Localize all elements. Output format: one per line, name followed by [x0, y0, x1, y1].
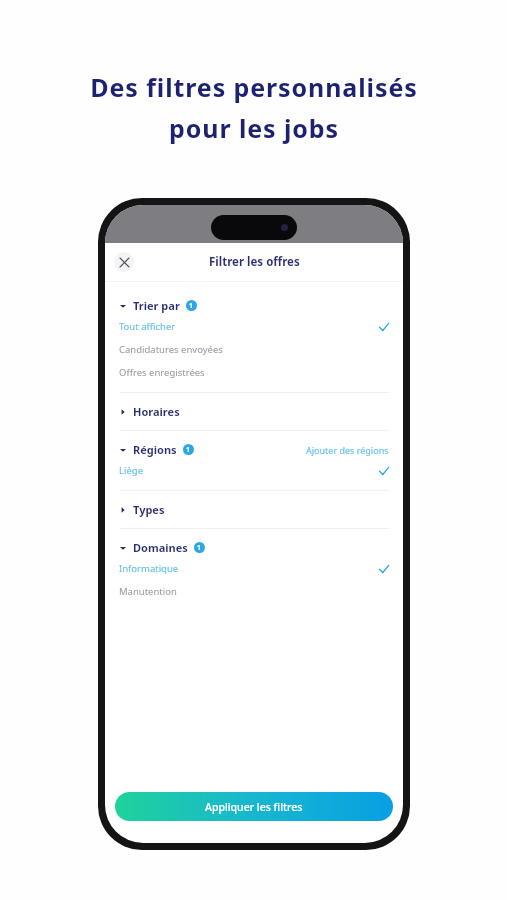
staticText: 1	[197, 543, 202, 553]
staticText: Candidatures envoyées	[119, 343, 223, 356]
button[interactable]: Manutention	[119, 580, 389, 603]
staticText: Manutention	[119, 585, 177, 598]
button[interactable]: Tout afficher	[119, 315, 389, 338]
button[interactable]: Régions	[119, 440, 389, 459]
staticText: pour les jobs	[169, 111, 339, 145]
button[interactable]: Candidatures envoyées	[119, 338, 389, 361]
button[interactable]: Offres enregistrées	[119, 361, 389, 384]
button[interactable]: Appliquer les filtres	[115, 792, 393, 821]
staticText: Trier par	[133, 298, 180, 313]
staticText: Régions	[133, 442, 177, 457]
staticText: Appliquer les filtres	[205, 800, 303, 814]
staticText: Horaires	[133, 404, 180, 419]
staticText: 1	[189, 301, 194, 311]
staticText: Offres enregistrées	[119, 366, 205, 379]
staticText: Informatique	[119, 562, 179, 575]
button[interactable]: Horaires	[119, 402, 389, 421]
staticText: Tout afficher	[119, 320, 176, 333]
button[interactable]: Trier par	[119, 296, 389, 315]
button[interactable]: Domaines	[119, 538, 389, 557]
staticText: Domaines	[133, 540, 188, 555]
staticText: Des filtres personnalisés	[90, 70, 418, 104]
staticText: 1	[186, 445, 191, 455]
staticText: Ajouter des régions	[306, 444, 389, 456]
button[interactable]: Liège	[119, 459, 389, 482]
button[interactable]: Informatique	[119, 557, 389, 580]
staticText: Filtrer les offres	[209, 254, 300, 270]
button[interactable]: Fermer	[114, 252, 134, 272]
button[interactable]: Ajouter des régions	[306, 444, 389, 456]
button[interactable]: Types	[119, 500, 389, 519]
staticText: Types	[133, 502, 165, 517]
staticText: Liège	[119, 464, 143, 477]
